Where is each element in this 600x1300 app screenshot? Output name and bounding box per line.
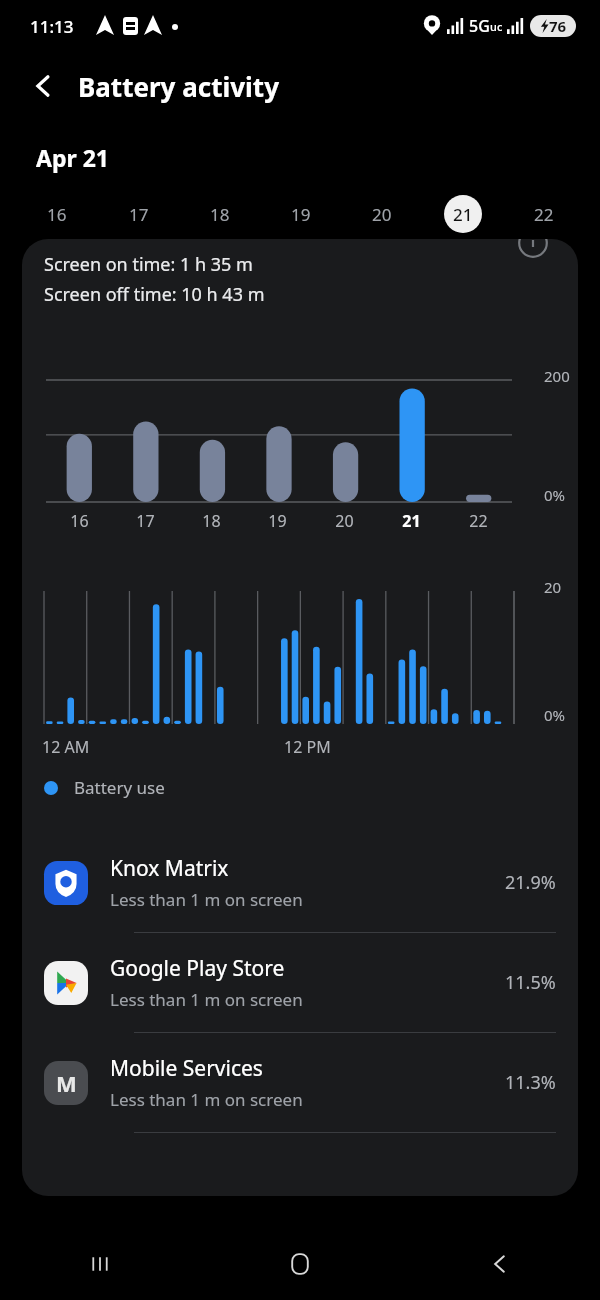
button[interactable]: M [22, 1033, 578, 1132]
staticText: 21 [402, 510, 421, 532]
button[interactable]: Home [200, 1228, 400, 1300]
staticText: 17 [129, 203, 149, 226]
staticText: Battery use [74, 776, 165, 799]
button[interactable]: Recent apps [0, 1228, 200, 1300]
button[interactable]: 21 [422, 191, 503, 237]
button[interactable]: 16 [16, 191, 98, 237]
staticText: 12 PM [284, 736, 331, 758]
staticText: 76 [549, 16, 567, 36]
staticText: Screen off time: 10 h 43 m [44, 282, 265, 307]
button[interactable]: 19 [260, 191, 341, 237]
staticText: Apr 21 [36, 142, 110, 173]
staticText: Mobile Services [110, 1054, 263, 1083]
staticText: 20 [544, 577, 562, 597]
staticText: Knox Matrix [110, 854, 229, 883]
button[interactable]: Back [400, 1228, 600, 1300]
staticText: 21.9% [505, 870, 556, 895]
staticText: 20 [372, 203, 392, 226]
button[interactable]: Back [18, 60, 70, 112]
button[interactable]: Google Play Store [22, 933, 578, 1032]
button[interactable]: 17 [98, 191, 179, 237]
staticText: Battery activity [78, 69, 279, 104]
staticText: Google Play Store [110, 954, 285, 983]
staticText: 22 [469, 510, 488, 532]
button[interactable]: Knox Matrix [22, 833, 578, 932]
staticText: 21 [453, 203, 473, 226]
staticText: 11.3% [505, 1070, 556, 1095]
staticText: 16 [70, 510, 89, 532]
staticText: 22 [534, 203, 554, 226]
staticText: 0% [544, 485, 566, 505]
staticText: 19 [291, 203, 311, 226]
staticText: 20 [335, 510, 354, 532]
staticText: 17 [136, 510, 155, 532]
button[interactable]: 18 [179, 191, 260, 237]
staticText: 11:13 [30, 15, 74, 38]
staticText: 19 [268, 510, 287, 532]
staticText: 11.5% [505, 970, 556, 995]
staticText: 0% [544, 705, 566, 725]
button[interactable]: 22 [503, 191, 584, 237]
staticText: Less than 1 m on screen [110, 888, 303, 911]
staticText: 12 AM [42, 736, 90, 758]
staticText: 18 [202, 510, 221, 532]
staticText: 16 [47, 203, 67, 226]
staticText: uc [490, 19, 503, 34]
staticText: Screen on time: 1 h 35 m [44, 252, 253, 277]
staticText: Less than 1 m on screen [110, 1088, 303, 1111]
staticText: 18 [210, 203, 230, 226]
button[interactable]: 20 [341, 191, 422, 237]
staticText: M [56, 1068, 77, 1098]
staticText: 5G [469, 15, 490, 37]
staticText: 200 [544, 366, 570, 386]
button[interactable]: Battery use [44, 776, 578, 799]
staticText: Less than 1 m on screen [110, 988, 303, 1011]
